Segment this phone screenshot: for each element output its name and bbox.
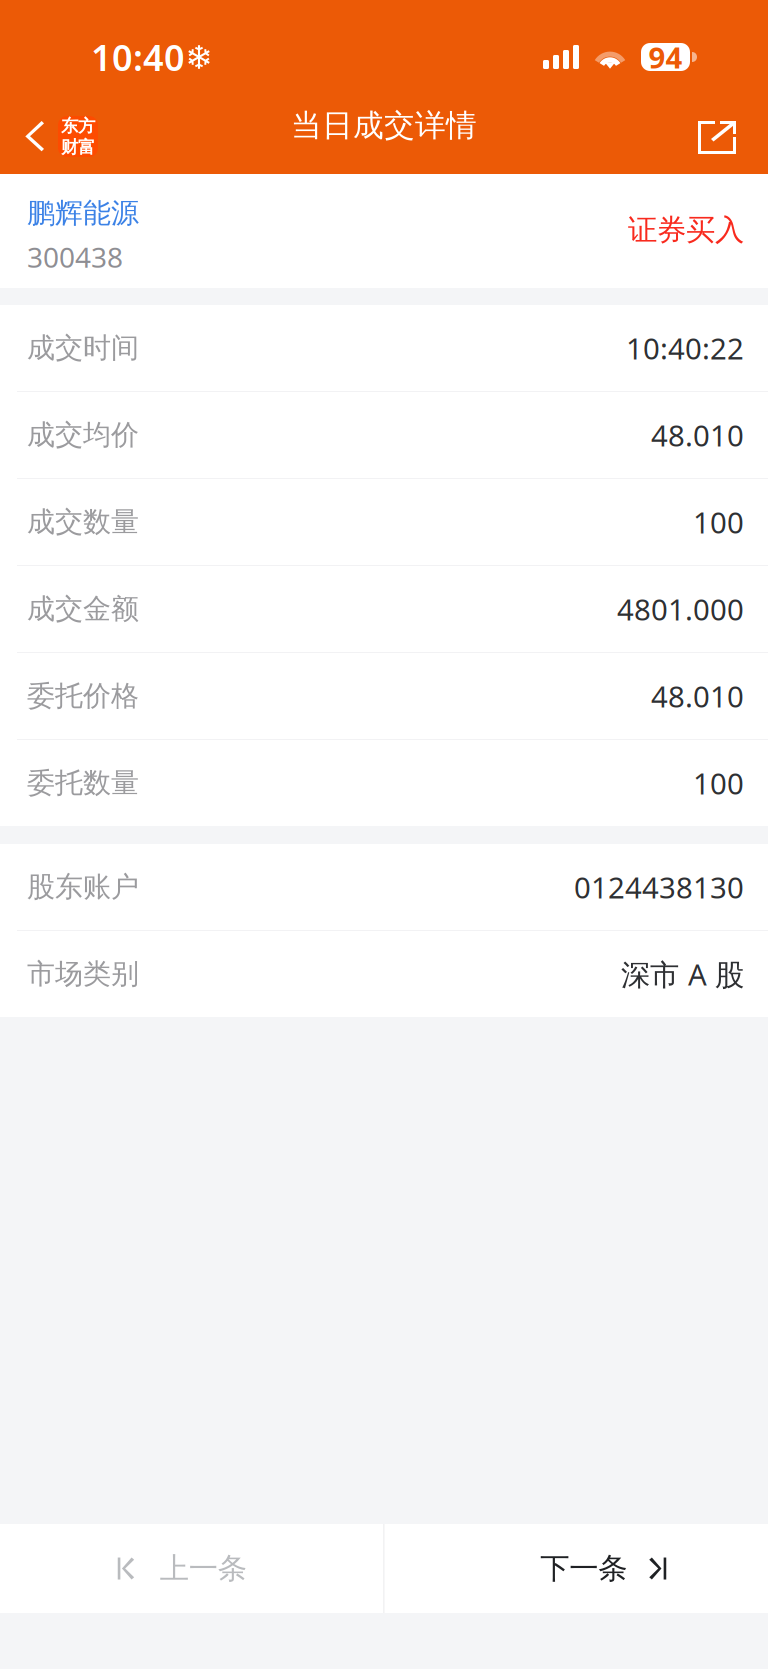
staticText: 委托数量	[27, 766, 139, 800]
staticText: 100	[693, 502, 744, 541]
staticText: 成交数量	[27, 505, 139, 539]
button[interactable]: 上一条	[0, 1524, 383, 1613]
staticText: 10:40:22	[626, 328, 744, 367]
staticText: 94	[648, 37, 682, 76]
staticText: 300438	[27, 238, 123, 276]
staticText: 委托价格	[27, 679, 139, 713]
staticText: 100	[693, 763, 744, 802]
staticText: 东方	[61, 115, 95, 136]
staticText: 10:40	[91, 33, 185, 81]
staticText: 鹏辉能源	[27, 196, 139, 230]
staticText: 下一条	[540, 1550, 627, 1586]
staticText: 成交时间	[27, 331, 139, 365]
staticText: 市场类别	[27, 957, 139, 991]
staticText: 0124438130	[574, 867, 744, 906]
staticText: 股东账户	[27, 870, 139, 904]
staticText: 48.010	[651, 676, 744, 715]
staticText: 成交均价	[27, 418, 139, 452]
staticText: 4801.000	[617, 589, 744, 628]
staticText: 成交金额	[27, 592, 139, 626]
button[interactable]: 分享	[682, 96, 752, 174]
button[interactable]: 返回 东方财富	[0, 96, 110, 174]
staticText: 证券买入	[628, 212, 744, 248]
button[interactable]: 下一条	[384, 1524, 768, 1613]
staticText: 48.010	[651, 415, 744, 454]
staticText: 财富	[61, 136, 95, 158]
staticText: 当日成交详情	[291, 107, 477, 144]
staticText: 深市 A 股	[621, 954, 744, 993]
staticText: 上一条	[160, 1550, 247, 1586]
